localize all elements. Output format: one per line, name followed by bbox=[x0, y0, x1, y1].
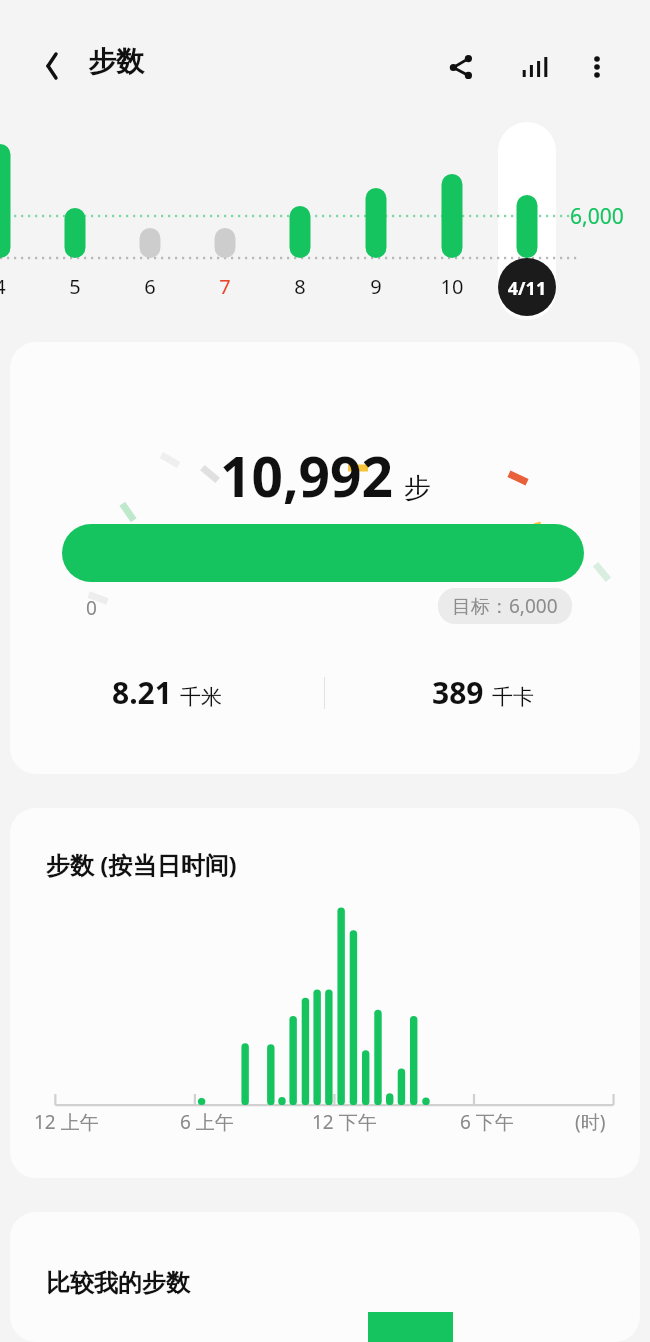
staticText: 12 上午 bbox=[34, 1109, 99, 1135]
staticText: 10 bbox=[427, 273, 477, 300]
staticText: 8 bbox=[275, 273, 325, 300]
staticText: 6 bbox=[125, 273, 175, 300]
staticText: 比较我的步数 bbox=[46, 1268, 190, 1298]
button[interactable]: Back bbox=[28, 42, 76, 90]
staticText: 6 下午 bbox=[460, 1109, 514, 1135]
staticText: 4 bbox=[0, 273, 25, 300]
button[interactable]: Share bbox=[437, 43, 485, 91]
button[interactable]: 步数 (按当日时间) bbox=[10, 808, 640, 1178]
staticText: 步数 bbox=[88, 44, 144, 79]
button[interactable]: 4 bbox=[0, 118, 650, 330]
staticText: (时) bbox=[575, 1109, 606, 1135]
staticText: 7 bbox=[200, 273, 250, 300]
staticText: 0 bbox=[86, 595, 97, 621]
staticText: 步 bbox=[404, 471, 431, 505]
button[interactable]: More options bbox=[573, 43, 621, 91]
staticText: 4/11 bbox=[497, 276, 557, 301]
button[interactable]: 10,992 bbox=[10, 342, 640, 774]
staticText: 389 bbox=[432, 672, 484, 713]
staticText: 12 下午 bbox=[312, 1109, 377, 1135]
staticText: 千卡 bbox=[492, 684, 534, 710]
staticText: 5 bbox=[50, 273, 100, 300]
staticText: 9 bbox=[351, 273, 401, 300]
staticText: 8.21 bbox=[112, 672, 172, 713]
staticText: 目标：6,000 bbox=[452, 593, 558, 619]
staticText: 6,000 bbox=[570, 202, 624, 231]
button[interactable]: 比较我的步数 bbox=[10, 1212, 640, 1342]
staticText: 千米 bbox=[180, 684, 222, 710]
staticText: 步数 (按当日时间) bbox=[46, 848, 237, 881]
staticText: 10,992 bbox=[220, 438, 393, 513]
button[interactable]: Chart bbox=[511, 43, 559, 91]
staticText: 6 上午 bbox=[180, 1109, 234, 1135]
